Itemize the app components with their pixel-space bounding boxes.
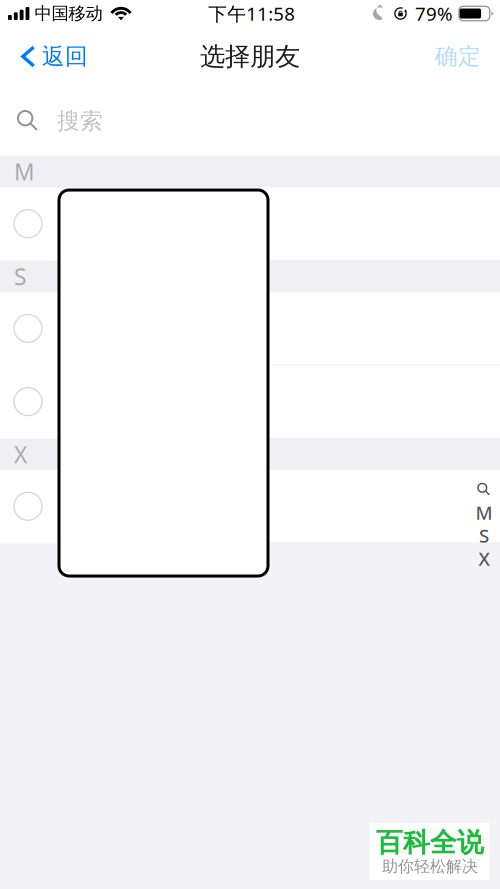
button[interactable] [0, 365, 500, 439]
staticText: M [475, 500, 492, 525]
staticText: 79% [415, 1, 453, 26]
staticText: X [14, 439, 27, 469]
staticText: X [478, 546, 489, 571]
staticText: 百科全说 [376, 826, 484, 859]
staticText: 选择朋友 [200, 41, 300, 72]
staticText: 确定 [435, 43, 481, 70]
staticText: 下午11:58 [208, 1, 295, 26]
button[interactable] [0, 470, 500, 543]
staticText: S [14, 261, 26, 291]
staticText: 返回 [42, 43, 88, 70]
staticText: 助你轻松解决 [382, 857, 478, 876]
button[interactable]: M [473, 501, 495, 524]
button[interactable]: 搜索 [473, 478, 495, 501]
button[interactable]: 搜索 [0, 86, 500, 156]
staticText: M [14, 157, 35, 187]
button[interactable]: 确定 [421, 32, 500, 80]
button[interactable] [0, 187, 500, 261]
button[interactable]: X [473, 547, 495, 570]
button[interactable]: 返回 [0, 32, 100, 80]
staticText: 搜索 [57, 107, 103, 135]
staticText: 中国移动 [34, 3, 102, 24]
button[interactable] [0, 292, 500, 365]
staticText: S [479, 523, 489, 548]
button[interactable]: S [473, 524, 495, 547]
